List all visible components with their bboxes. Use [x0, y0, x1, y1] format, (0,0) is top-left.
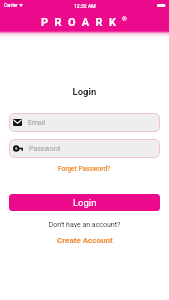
staticText: Carrier [4, 3, 18, 8]
staticText: Login [73, 197, 97, 208]
staticText: Login [0, 86, 169, 97]
button[interactable]: Create Account [54, 234, 116, 247]
button[interactable]: Email [9, 113, 160, 132]
button[interactable]: Login [9, 194, 160, 211]
other: Wi-Fi [19, 4, 23, 7]
button[interactable]: Password [9, 139, 160, 158]
staticText: PROARK [41, 16, 123, 29]
staticText: ® [122, 15, 127, 22]
button[interactable]: Forget Password? [55, 163, 114, 175]
staticText: Forget Password? [58, 165, 111, 173]
other: Battery [157, 4, 166, 7]
staticText: 12:32 AM [74, 3, 96, 9]
staticText: Don't have an account? [0, 221, 169, 229]
staticText: Password [29, 145, 60, 153]
staticText: Create Account [57, 236, 113, 245]
staticText: Email [28, 119, 46, 127]
